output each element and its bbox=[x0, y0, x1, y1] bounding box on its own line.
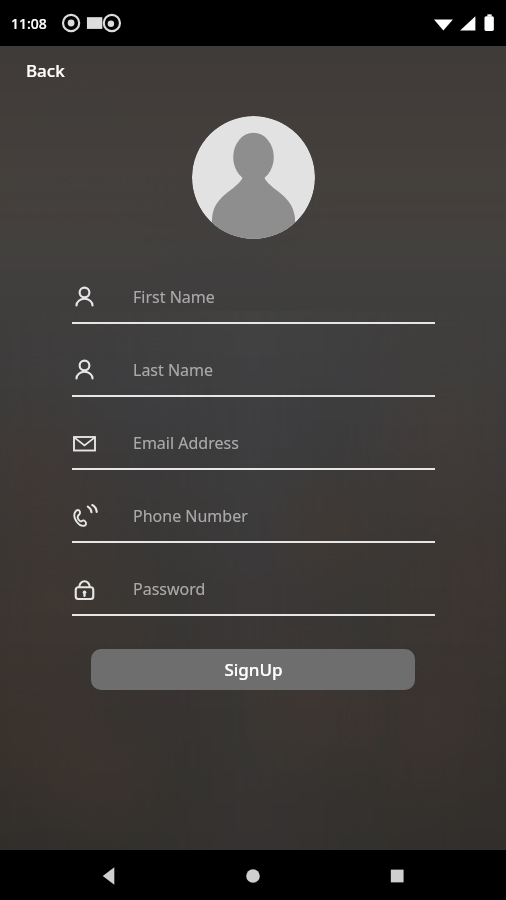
button[interactable]: Last Name bbox=[72, 345, 435, 397]
button[interactable]: Home bbox=[170, 850, 337, 900]
staticText: Back bbox=[26, 59, 65, 82]
staticText: First Name bbox=[133, 286, 215, 308]
button[interactable]: Password bbox=[72, 564, 435, 616]
staticText: Password bbox=[133, 578, 206, 600]
staticText: Email Address bbox=[133, 432, 239, 454]
button[interactable]: SignUp bbox=[91, 649, 415, 690]
button[interactable]: Back bbox=[0, 850, 167, 900]
button[interactable]: Recents bbox=[339, 850, 506, 900]
button[interactable]: Back bbox=[14, 53, 77, 88]
staticText: SignUp bbox=[224, 658, 283, 681]
button[interactable]: Email Address bbox=[72, 418, 435, 470]
staticText: Last Name bbox=[133, 359, 214, 381]
button[interactable]: Phone Number bbox=[72, 491, 435, 543]
button[interactable]: Profile photo bbox=[192, 116, 315, 239]
button[interactable]: First Name bbox=[72, 272, 435, 324]
staticText: Phone Number bbox=[133, 505, 248, 527]
staticText: 11:08 bbox=[11, 14, 47, 33]
